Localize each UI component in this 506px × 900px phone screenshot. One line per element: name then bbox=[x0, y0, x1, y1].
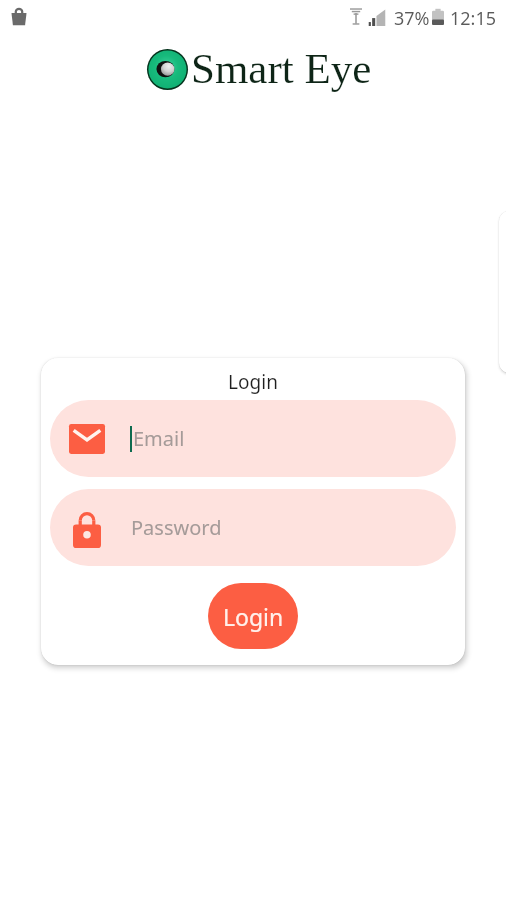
staticText: 12:15 bbox=[450, 6, 497, 31]
staticText: 37% bbox=[394, 6, 430, 31]
other: Notification bbox=[11, 8, 27, 26]
button[interactable]: Email bbox=[50, 400, 456, 477]
button[interactable]: Password bbox=[50, 489, 456, 566]
button[interactable]: Login bbox=[208, 583, 298, 649]
staticText: Login bbox=[41, 369, 465, 395]
staticText: Smart Eye bbox=[191, 45, 372, 93]
staticText: Login bbox=[223, 601, 284, 632]
staticText: Email bbox=[133, 425, 185, 452]
staticText: Password bbox=[131, 514, 222, 541]
